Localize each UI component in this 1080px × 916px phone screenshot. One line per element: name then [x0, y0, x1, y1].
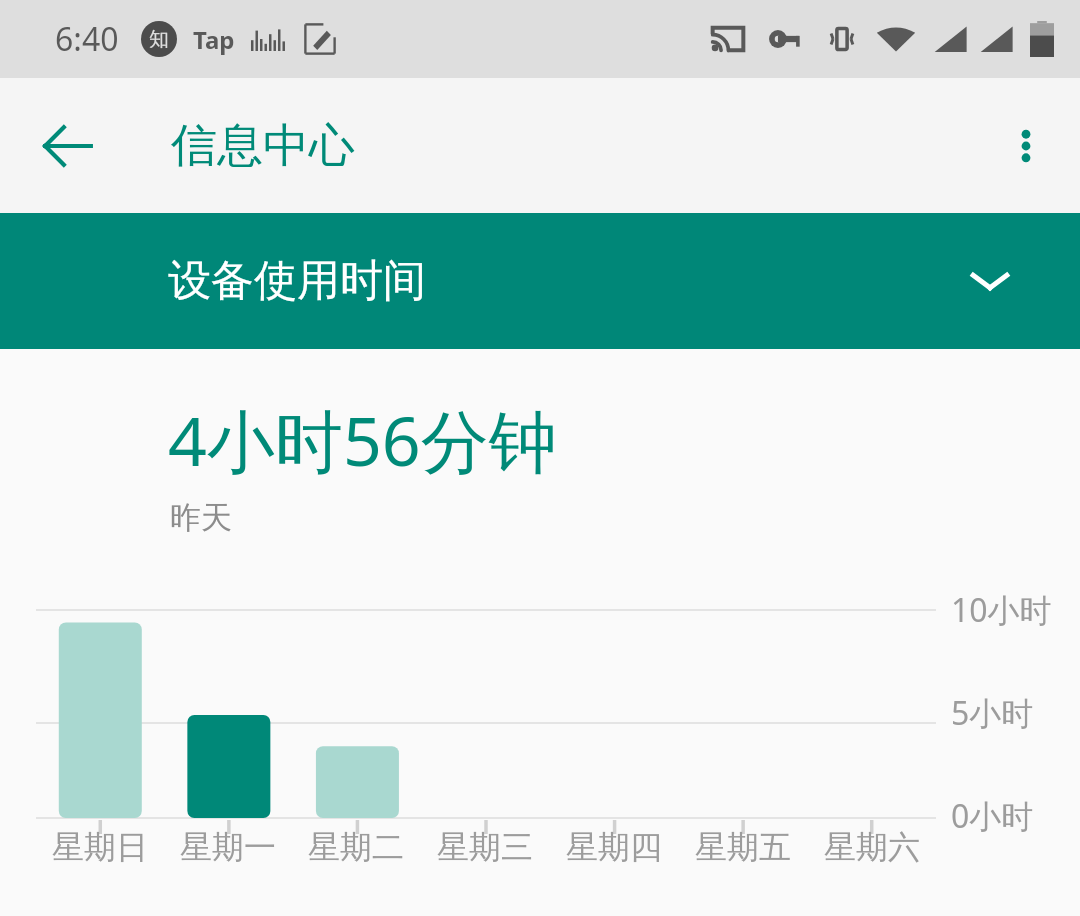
staticText: 星期四 [566, 827, 662, 867]
button[interactable]: 设备使用时间 [0, 213, 1080, 349]
staticText: 4小时56分钟 [168, 393, 557, 486]
staticText: 知 [149, 27, 169, 52]
staticText: 星期日 [52, 827, 148, 867]
staticText: Tap [193, 23, 235, 56]
staticText: 5小时 [951, 691, 1034, 735]
staticText: 星期二 [308, 827, 404, 867]
other: Collapse [960, 251, 1020, 311]
staticText: 设备使用时间 [168, 254, 426, 308]
button[interactable]: Back [24, 102, 112, 190]
staticText: 星期三 [437, 827, 533, 867]
button[interactable]: More options [982, 102, 1070, 190]
staticText: 0小时 [951, 794, 1034, 838]
staticText: 10小时 [951, 588, 1052, 632]
staticText: 星期一 [180, 827, 276, 867]
staticText: 信息中心 [171, 117, 355, 175]
staticText: 星期五 [695, 827, 791, 867]
staticText: 昨天 [170, 498, 232, 537]
staticText: 6:40 [55, 17, 119, 61]
staticText: 星期六 [824, 827, 920, 867]
